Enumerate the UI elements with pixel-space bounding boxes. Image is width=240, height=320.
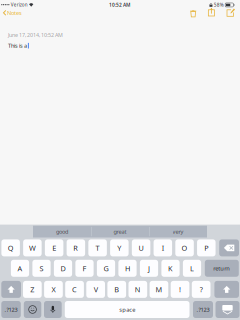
staticText: J [148, 263, 150, 273]
staticText: June 17, 2014, 10:52 AM [8, 31, 63, 39]
staticText: O [182, 243, 188, 253]
button[interactable]: P [0, 0, 18, 17]
staticText: G [103, 263, 108, 273]
staticText: M [155, 284, 162, 294]
staticText: 10:52 AM [109, 2, 130, 8]
button[interactable]: Dictate [0, 0, 18, 17]
staticText: H [125, 263, 130, 273]
button[interactable]: K [0, 0, 18, 17]
staticText: .?123 [4, 306, 17, 313]
button[interactable]: H [0, 0, 18, 17]
button[interactable]: good [33, 226, 91, 237]
staticText: Q [8, 243, 14, 253]
button[interactable]: C [0, 0, 19, 17]
staticText: space [119, 306, 135, 313]
staticText: Z [30, 284, 34, 294]
staticText: return [213, 264, 230, 272]
staticText: U [139, 243, 144, 253]
button[interactable]: E [0, 0, 18, 17]
button[interactable]: Shift [0, 0, 25, 17]
button[interactable]: A [0, 0, 18, 17]
staticText: I [162, 243, 164, 253]
staticText: V [94, 284, 98, 294]
staticText: Verizon [11, 2, 28, 8]
button[interactable]: B [0, 0, 19, 17]
staticText: X [51, 284, 55, 294]
staticText: ? [200, 284, 203, 294]
button[interactable]: Share [204, 5, 219, 20]
button[interactable]: Delete note [186, 5, 201, 20]
staticText: D [60, 263, 65, 273]
staticText: Notes [7, 9, 22, 17]
staticText: Y [117, 243, 121, 253]
staticText: R [73, 243, 78, 253]
staticText: C [72, 284, 77, 294]
button[interactable]: Emoji [0, 0, 17, 17]
button[interactable]: ! [0, 0, 19, 17]
button[interactable]: L [0, 0, 18, 17]
button[interactable]: Notes [1, 6, 24, 20]
staticText: E [52, 243, 56, 253]
button[interactable]: Hide Keyboard [0, 0, 24, 17]
button[interactable]: Q [0, 0, 18, 17]
button[interactable]: N [0, 0, 19, 17]
button[interactable]: Z [0, 0, 19, 17]
button[interactable]: U [0, 0, 18, 17]
button[interactable]: I [0, 0, 18, 17]
button[interactable]: Y [0, 0, 18, 17]
staticText: W [29, 243, 36, 253]
staticText: K [168, 263, 173, 273]
staticText: A [17, 263, 22, 273]
button[interactable]: New note [224, 5, 239, 20]
button[interactable]: G [0, 0, 18, 17]
button[interactable]: space [0, 0, 125, 17]
button[interactable]: R [0, 0, 18, 17]
button[interactable]: M [0, 0, 19, 17]
button[interactable]: X [0, 0, 19, 17]
button[interactable]: ? [0, 0, 19, 17]
button[interactable]: .?123 [0, 0, 19, 17]
button[interactable]: D [0, 0, 18, 17]
button[interactable]: O [0, 0, 18, 17]
button[interactable]: T [0, 0, 18, 17]
staticText: B [114, 284, 119, 294]
staticText: 58% [214, 2, 224, 8]
staticText: This is a [8, 42, 27, 49]
staticText: very [172, 228, 183, 235]
button[interactable]: great [91, 226, 149, 237]
staticText: L [190, 263, 194, 273]
button[interactable]: Delete [0, 0, 20, 17]
staticText: good [56, 228, 68, 235]
button[interactable]: W [0, 0, 18, 17]
staticText: N [135, 284, 141, 294]
button[interactable]: S [0, 0, 18, 17]
staticText: .?123 [196, 306, 209, 313]
button[interactable]: V [0, 0, 19, 17]
button[interactable]: very [149, 226, 207, 237]
staticText: P [204, 243, 208, 253]
staticText: T [96, 243, 100, 253]
staticText: S [39, 263, 43, 273]
staticText: F [82, 263, 86, 273]
button[interactable]: return [0, 0, 34, 17]
staticText: ! [179, 284, 181, 294]
staticText: great [113, 228, 126, 235]
button[interactable]: Shift [0, 0, 20, 17]
button[interactable]: .?123 [0, 0, 20, 17]
button[interactable]: J [0, 0, 18, 17]
button[interactable]: F [0, 0, 18, 17]
